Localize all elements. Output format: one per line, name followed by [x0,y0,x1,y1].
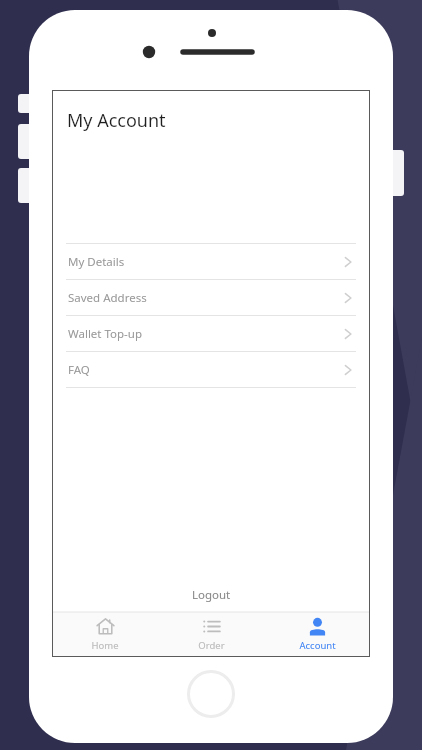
staticText: Order [198,639,225,652]
staticText: Account [299,639,336,652]
staticText: Logout [192,587,231,603]
button[interactable]: Saved Address [66,280,356,315]
button[interactable]: Wallet Top-up [66,316,356,351]
other: Account [308,617,327,636]
staticText: My Details [68,254,340,270]
button[interactable]: Order [158,612,264,657]
button[interactable]: FAQ [66,352,356,387]
staticText: My Account [67,108,166,133]
other: Home [96,617,115,636]
staticText: Home [91,639,119,652]
staticText: Saved Address [68,290,340,306]
other: Order [202,617,221,636]
staticText: Wallet Top-up [68,326,340,342]
staticText: FAQ [68,362,340,378]
button[interactable]: Home [52,612,158,657]
button[interactable]: Logout [52,578,370,612]
button[interactable]: Account [264,612,370,657]
button[interactable]: My Details [66,244,356,279]
